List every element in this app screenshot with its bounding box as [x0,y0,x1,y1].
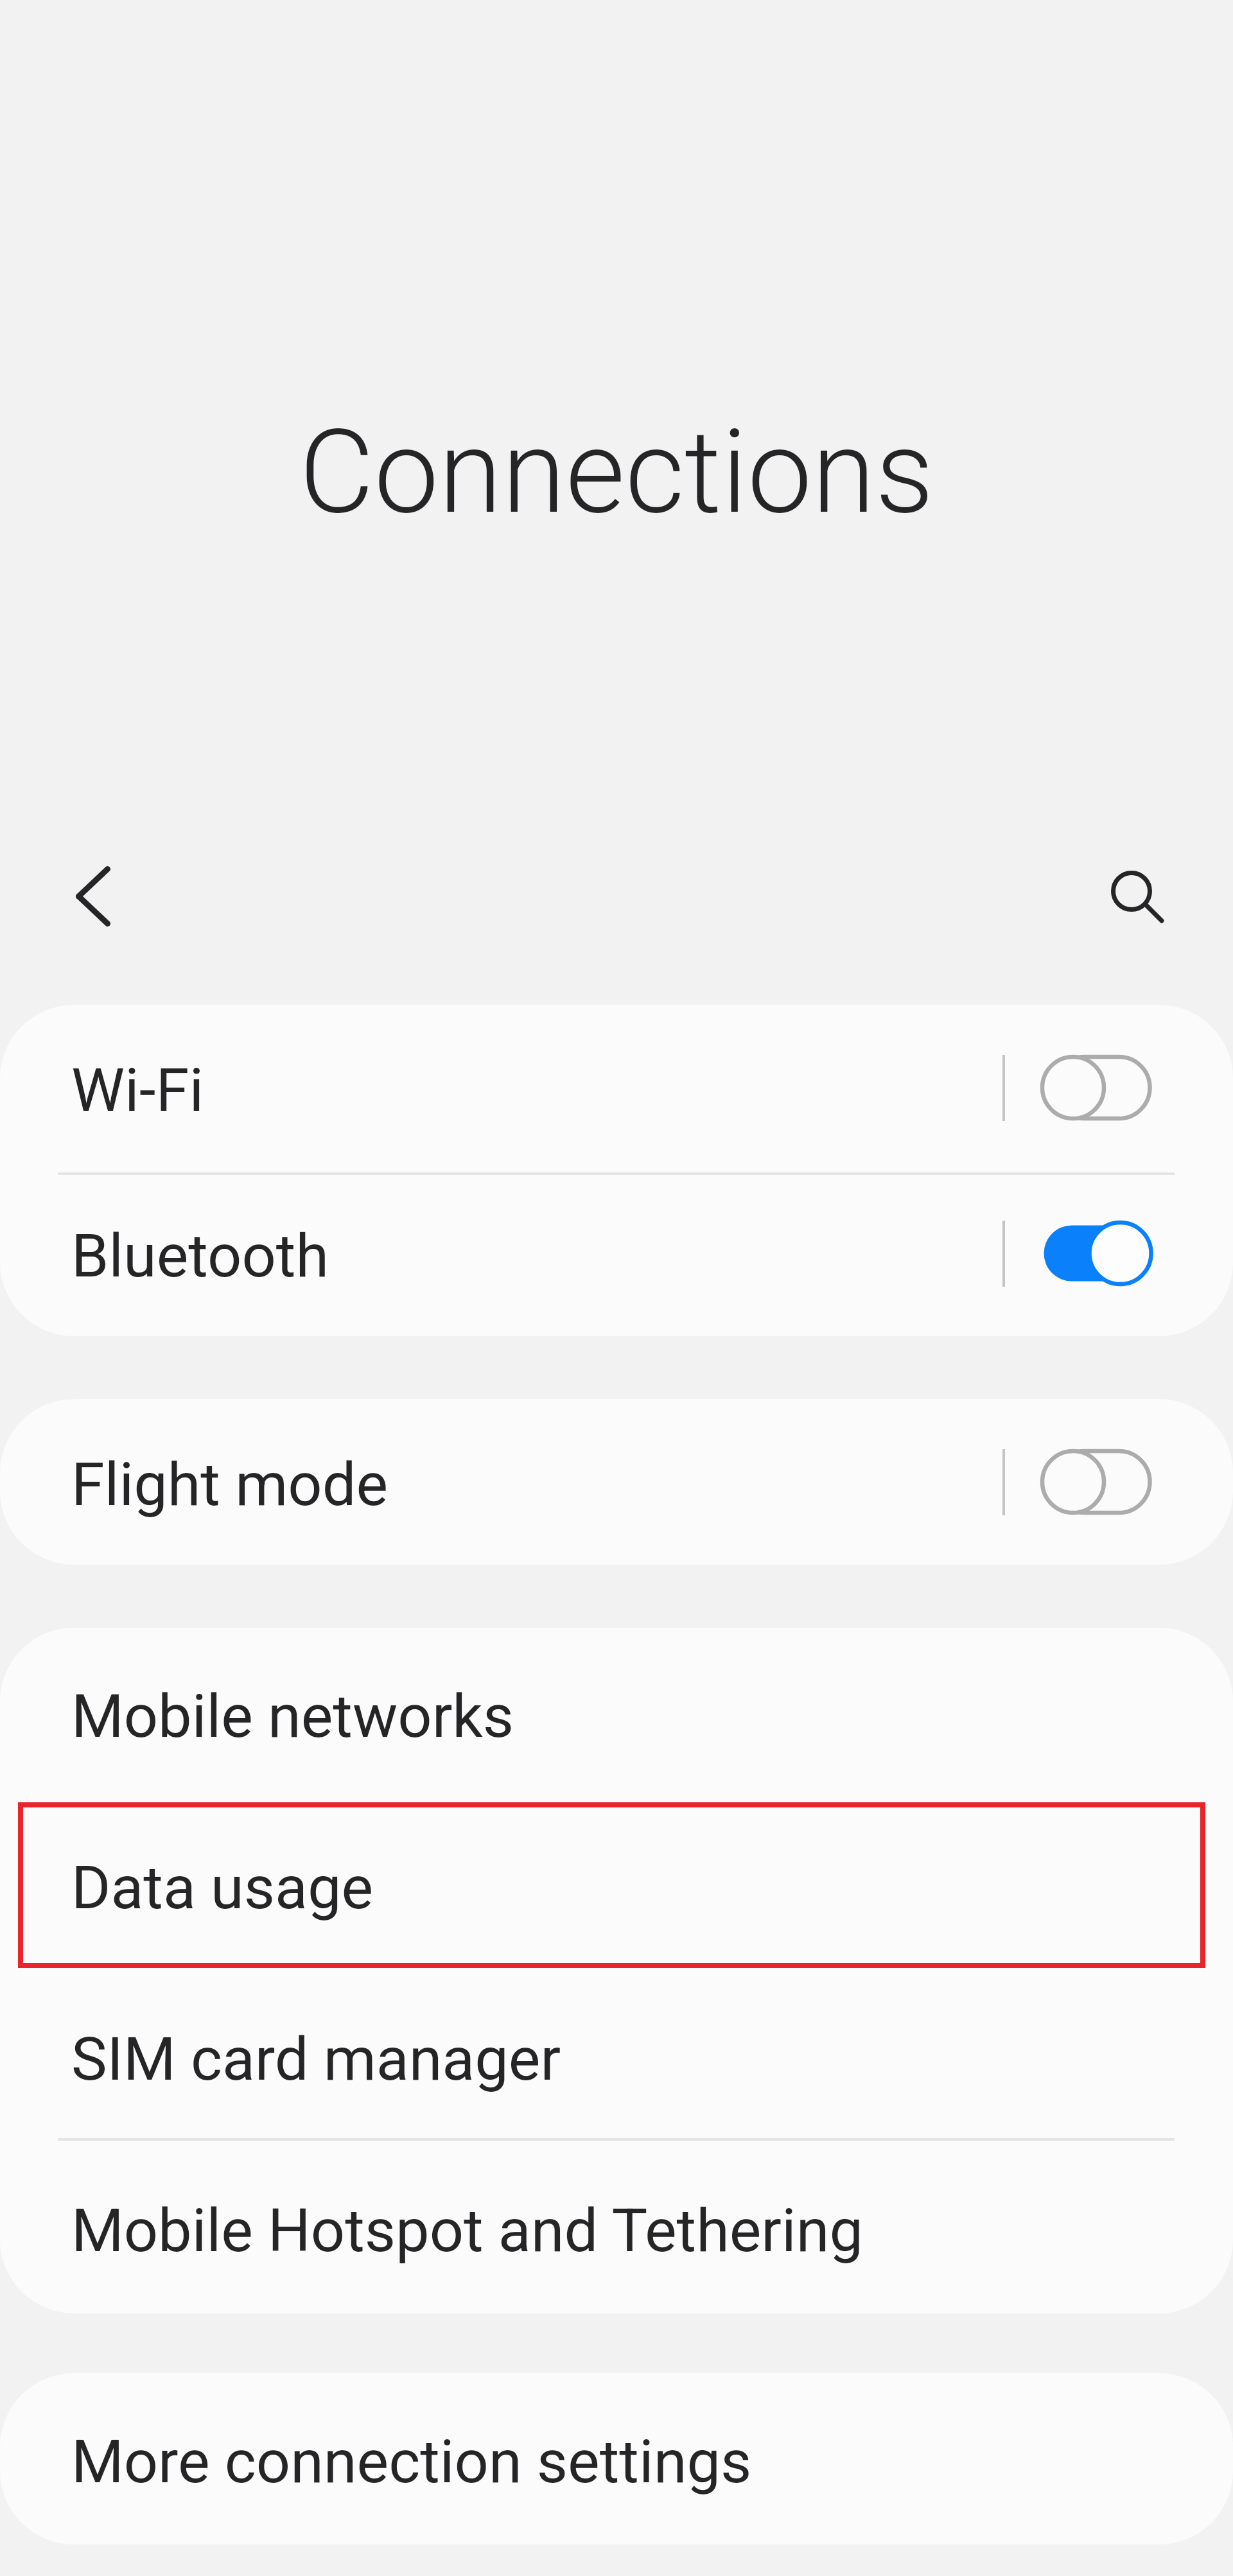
button[interactable]: Bluetooth [0,1171,1233,1336]
button[interactable]: Turn on [1092,1431,1233,1533]
button[interactable]: Navigate up [39,842,147,950]
button[interactable]: More connection settings [0,2373,1233,2545]
staticText: Connections [0,405,1233,539]
staticText: Wi-Fi [71,1055,204,1126]
button[interactable]: SIM card manager [0,1971,1233,2142]
button[interactable]: Flight mode [0,1399,1233,1565]
staticText: Mobile networks [71,1681,514,1752]
staticText: SIM card manager [71,2024,561,2094]
button[interactable]: Turn on [1092,1036,1233,1139]
button[interactable]: Mobile Hotspot and Tethering [0,2142,1233,2313]
button[interactable]: Search [1083,841,1191,949]
staticText: Mobile Hotspot and Tethering [71,2195,864,2266]
staticText: More connection settings [71,2426,752,2497]
button[interactable]: Wi-Fi [0,1005,1233,1171]
staticText: Flight mode [71,1449,389,1520]
staticText: Data usage [71,1852,374,1923]
button[interactable]: Turn off [1092,1202,1233,1305]
button[interactable]: Data usage [0,1799,1233,1971]
button[interactable]: Mobile networks [0,1628,1233,1799]
staticText: Bluetooth [71,1221,329,1291]
